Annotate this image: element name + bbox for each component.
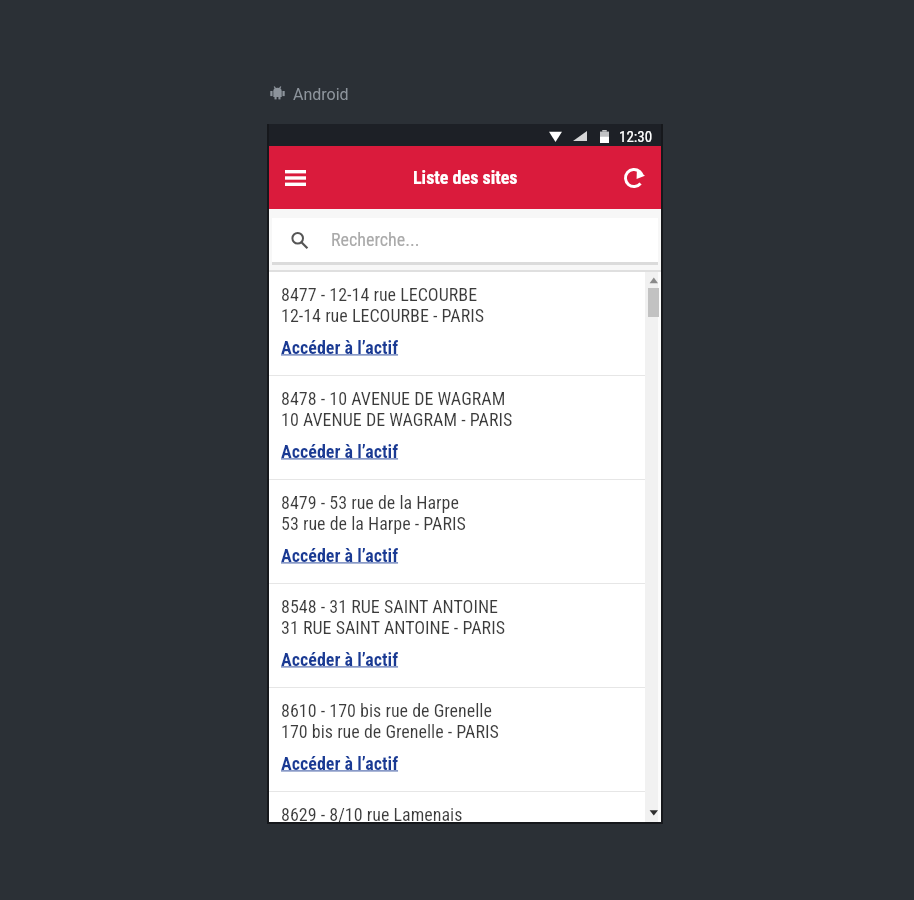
button[interactable]: 8477 - 12-14 rue LECOURBE bbox=[269, 272, 661, 375]
staticText: 31 RUE SAINT ANTOINE - PARIS bbox=[281, 617, 505, 638]
staticText: Recherche... bbox=[331, 229, 420, 250]
staticText: 8610 - 170 bis rue de Grenelle bbox=[281, 700, 492, 721]
button[interactable]: Open navigation menu bbox=[274, 157, 316, 199]
staticText: 53 rue de la Harpe - PARIS bbox=[281, 513, 466, 534]
button[interactable]: Recherche bbox=[272, 218, 658, 262]
staticText: Android bbox=[293, 85, 349, 104]
button[interactable]: Accéder à l’actif bbox=[281, 441, 399, 462]
staticText: 12:30 bbox=[619, 128, 653, 146]
staticText: 8479 - 53 rue de la Harpe bbox=[281, 492, 459, 513]
staticText: 170 bis rue de Grenelle - PARIS bbox=[281, 721, 499, 742]
button[interactable]: Accéder à l’actif bbox=[281, 753, 399, 774]
staticText: 10 AVENUE DE WAGRAM - PARIS bbox=[281, 409, 513, 430]
button[interactable]: 8478 - 10 AVENUE DE WAGRAM bbox=[269, 376, 661, 479]
button[interactable]: 8629 - 8/10 rue Lamenais bbox=[269, 792, 661, 822]
button[interactable]: Refresh bbox=[613, 157, 655, 199]
button[interactable]: Accéder à l’actif bbox=[281, 337, 399, 358]
staticText: 8548 - 31 RUE SAINT ANTOINE bbox=[281, 596, 498, 617]
button[interactable]: Accéder à l’actif bbox=[281, 545, 399, 566]
staticText: 12-14 rue LECOURBE - PARIS bbox=[281, 305, 485, 326]
staticText: 8629 - 8/10 rue Lamenais bbox=[281, 804, 463, 822]
staticText: Liste des sites bbox=[413, 167, 518, 188]
button[interactable]: 8548 - 31 RUE SAINT ANTOINE bbox=[269, 584, 661, 687]
button[interactable]: Accéder à l’actif bbox=[281, 649, 399, 670]
button[interactable]: 8479 - 53 rue de la Harpe bbox=[269, 480, 661, 583]
staticText: 8478 - 10 AVENUE DE WAGRAM bbox=[281, 388, 506, 409]
staticText: 8477 - 12-14 rue LECOURBE bbox=[281, 284, 478, 305]
button[interactable]: 8610 - 170 bis rue de Grenelle bbox=[269, 688, 661, 791]
